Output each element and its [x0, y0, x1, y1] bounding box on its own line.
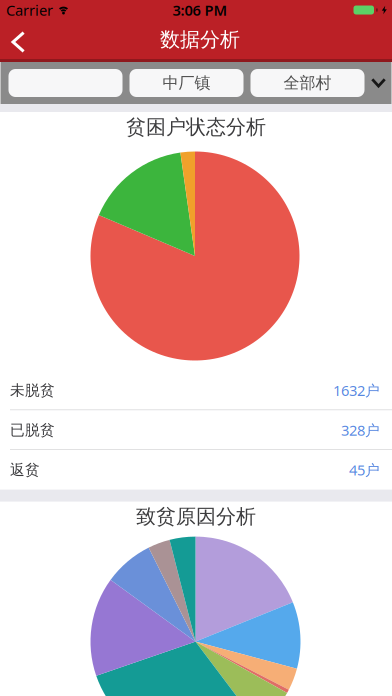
button[interactable]: 中厂镇	[129, 69, 243, 97]
staticText: 45户	[349, 460, 380, 479]
button[interactable]: Back	[9, 26, 31, 53]
staticText: Carrier	[6, 0, 53, 20]
staticText: 返贫	[10, 461, 40, 479]
staticText: 未脱贫	[10, 381, 55, 399]
staticText: 数据分析	[160, 27, 240, 52]
button[interactable]: Select county	[8, 69, 122, 97]
staticText: 致贫原因分析	[136, 504, 256, 529]
staticText: 328户	[341, 420, 380, 440]
staticText: 已脱贫	[10, 421, 55, 439]
staticText: 3:06 PM	[172, 0, 227, 20]
staticText: 贫困户状态分析	[126, 115, 266, 139]
button[interactable]: Expand filters	[371, 78, 391, 87]
button[interactable]: 全部村	[250, 69, 364, 97]
staticText: 中厂镇	[162, 73, 210, 93]
staticText: 全部村	[283, 73, 331, 93]
staticText: 1632户	[333, 381, 380, 400]
